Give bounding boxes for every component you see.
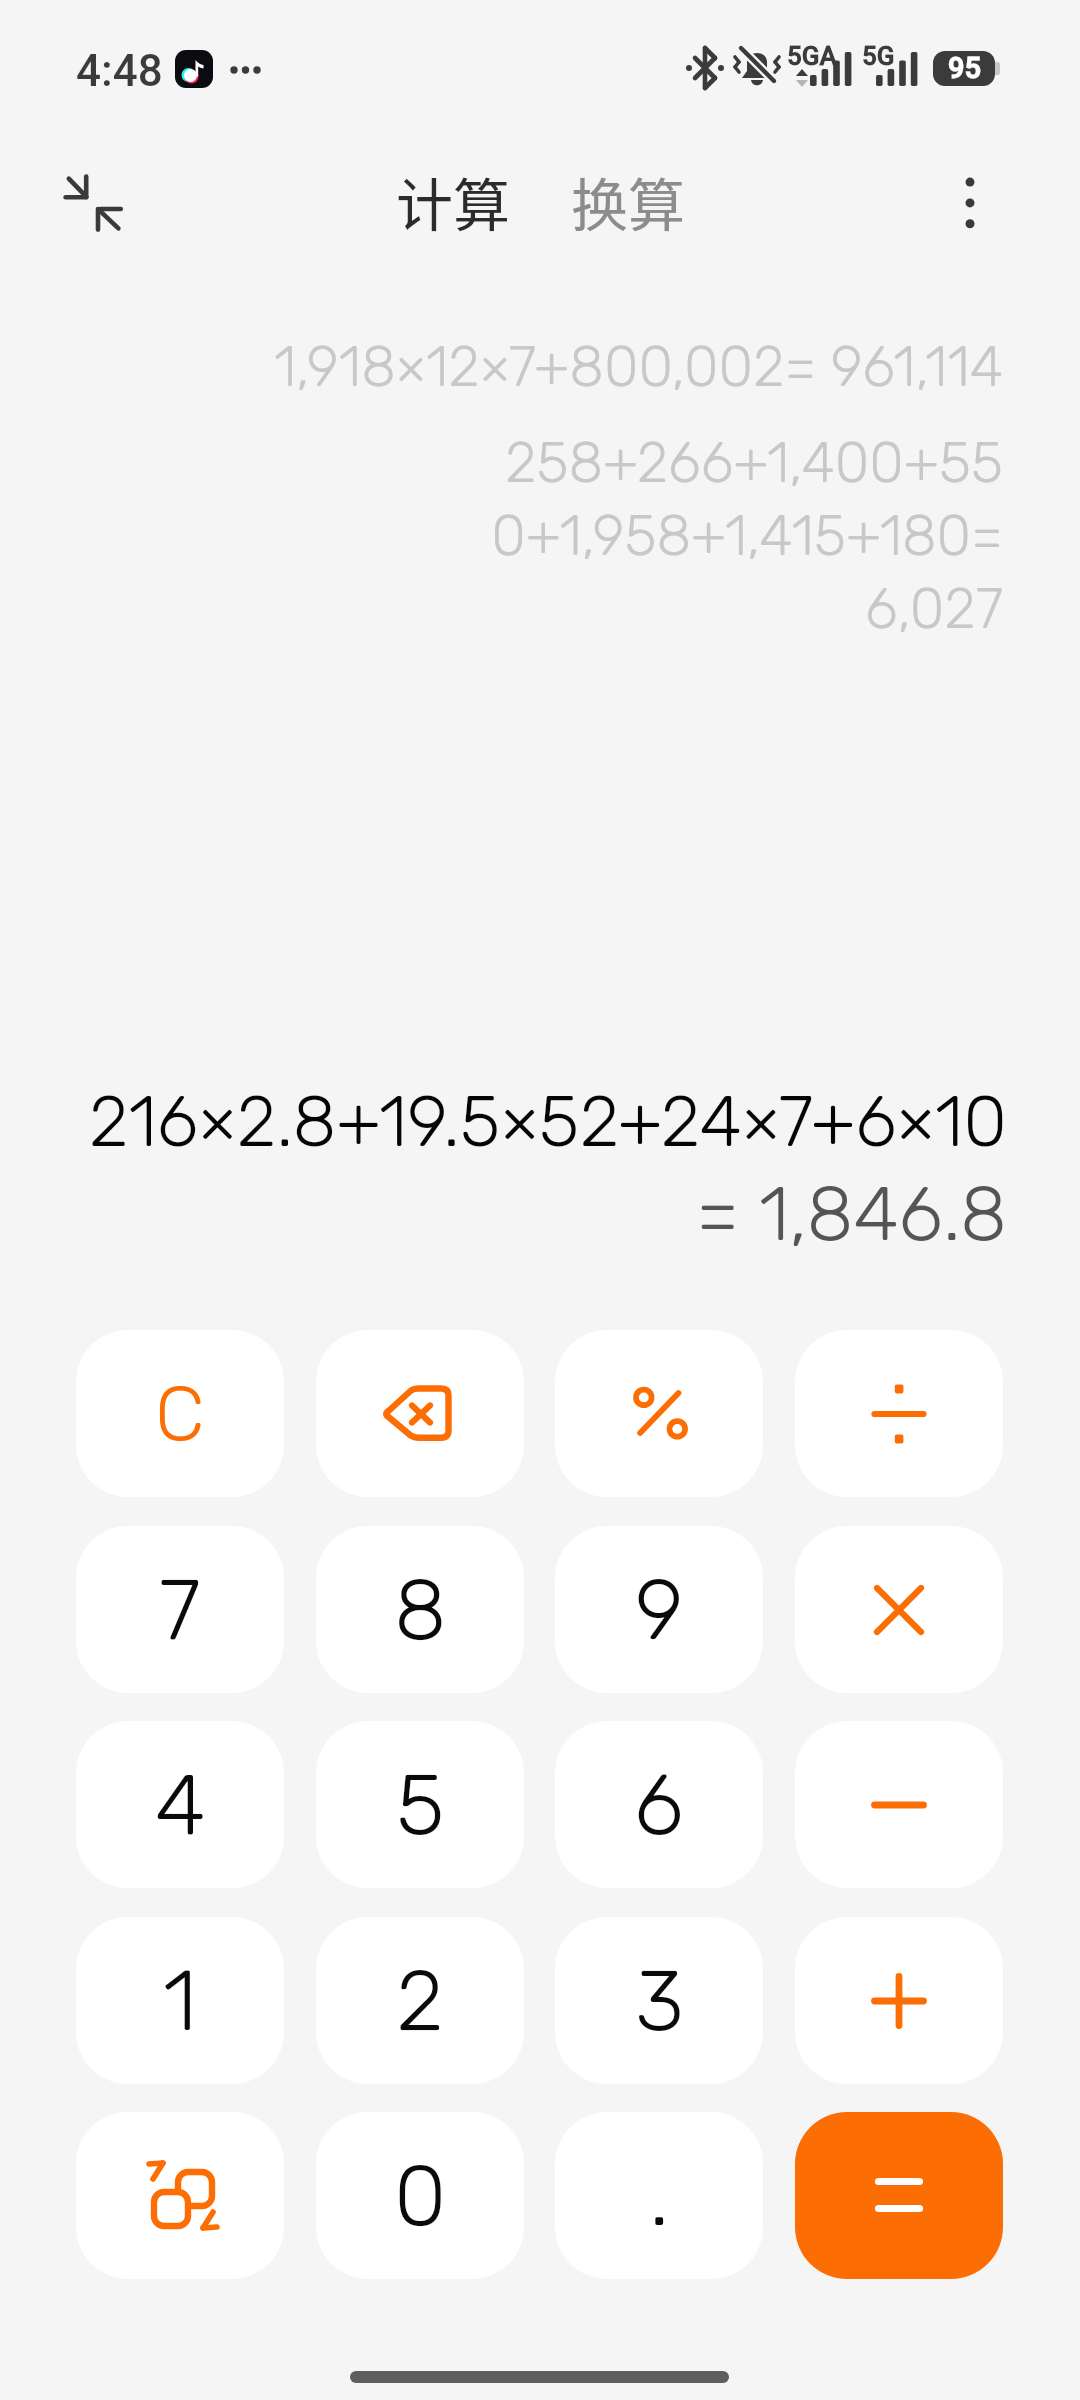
button[interactable]: Unit converter [76,2112,284,2279]
button[interactable]: 4 [76,1721,284,1888]
staticText: 2 [396,1951,444,2052]
staticText: 258+266+1,400+55 [40,430,1003,496]
button[interactable]: Exit full screen [56,167,132,243]
staticText: 3 [635,1951,684,2052]
button[interactable]: 换算 [571,160,685,243]
button[interactable]: 7 [76,1526,284,1693]
button[interactable]: 0 [316,2112,524,2279]
button[interactable]: Backspace [316,1330,524,1497]
button[interactable]: . [555,2112,763,2279]
staticText: 4:48 [76,45,163,97]
staticText: 5GA [787,41,837,71]
staticText: = 1,846.8 [40,1169,1007,1259]
staticText: 0+1,958+1,415+180= [40,503,1003,569]
staticText: 7 [159,1560,201,1661]
button[interactable]: C [76,1330,284,1497]
button[interactable]: 8 [316,1526,524,1693]
staticText: 8 [394,1560,447,1661]
button[interactable]: Equals [795,2112,1003,2279]
staticText: 5 [396,1755,445,1856]
staticText: 计算 [396,160,510,243]
staticText: . [649,2146,670,2247]
button[interactable]: Multiply [795,1526,1003,1693]
staticText: 4 [155,1755,206,1856]
button[interactable]: 计算 [396,160,510,243]
button[interactable]: 2 [316,1917,524,2084]
button[interactable]: 5 [316,1721,524,1888]
staticText: 216×2.8+19.5×52+24×7+6×10 [40,1080,1007,1164]
staticText: 95 [948,51,981,85]
staticText: 1 [163,1951,197,2052]
staticText: C [155,1369,205,1459]
button[interactable]: 9 [555,1526,763,1693]
button[interactable]: Plus [795,1917,1003,2084]
staticText: 9 [635,1560,684,1661]
staticText: 1,918×12×7+800,002= 961,114 [40,334,1003,400]
staticText: 5G [862,41,895,71]
button[interactable]: More options [922,156,1018,252]
button[interactable]: Percent [555,1330,763,1497]
button[interactable]: 1 [76,1917,284,2084]
staticText: 0 [394,2146,447,2247]
staticText: 换算 [571,160,685,243]
button[interactable]: Minus [795,1721,1003,1888]
staticText: 6,027 [40,576,1003,642]
button[interactable]: Divide [795,1330,1003,1497]
staticText: 6 [634,1755,684,1856]
button[interactable]: 6 [555,1721,763,1888]
button[interactable]: 3 [555,1917,763,2084]
